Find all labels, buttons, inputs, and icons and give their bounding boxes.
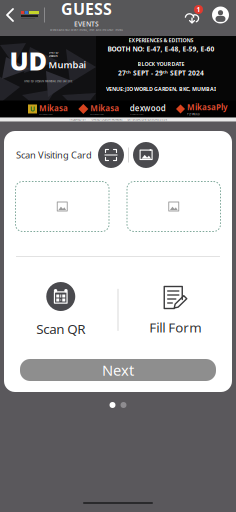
staticText: UNITED DESIGN MUMBAI INITIATIVE <box>24 79 72 83</box>
staticText: DESIGN <box>48 54 57 58</box>
staticText: Next <box>102 360 134 380</box>
staticText: MikasaPly <box>187 102 228 112</box>
button[interactable]: Add front of card <box>15 181 109 232</box>
staticText: BOOTH NO: E-47, E-48, E-59, E-60 <box>107 45 214 53</box>
staticText: EXPERIENCES & EDITIONS <box>128 36 193 44</box>
button[interactable]: Fill Form <box>118 283 232 336</box>
staticText: INTERIOR SOLUTIONS <box>130 113 144 115</box>
button[interactable]: Add back of card <box>126 181 221 232</box>
staticText: EVENTS <box>74 19 99 28</box>
staticText: 27ᵗʰ SEPT - 29ᵗʰ SEPT 2024 <box>118 68 204 77</box>
staticText: U <box>30 105 35 113</box>
staticText: Mikasa <box>39 103 68 113</box>
button[interactable]: Choose photo <box>133 142 159 168</box>
staticText: PRESENTED BY · UNITED DESIGN MUMBAI · EX… <box>68 118 167 121</box>
staticText: UD <box>9 44 47 77</box>
button[interactable]: Scan QR <box>4 282 117 338</box>
button[interactable]: Profile <box>204 0 236 30</box>
staticText: VENUE: JIO WORLD GARDEN, BKC, MUMBAI <box>106 85 216 92</box>
staticText: Scan Visiting Card <box>16 149 92 161</box>
staticText: PLYWOOD <box>187 112 200 116</box>
staticText: Mumbai <box>48 58 86 71</box>
button[interactable]: Back <box>0 0 21 30</box>
staticText: 1 <box>196 5 200 14</box>
staticText: Scan QR <box>36 320 85 338</box>
staticText: dexwood <box>130 103 166 113</box>
button[interactable]: Downloads <box>181 4 204 26</box>
staticText: REAL WOOD FLOORS <box>90 113 104 115</box>
staticText: BLOCK YOUR DATE <box>137 60 184 68</box>
staticText: Mikasa <box>90 103 119 113</box>
staticText: Fill Form <box>149 318 201 336</box>
staticText: GUESS <box>61 0 112 19</box>
button[interactable]: Next <box>20 359 216 381</box>
staticText: REAL WOOD FLOORS <box>39 113 53 115</box>
staticText: UNITED <box>48 51 58 54</box>
button[interactable]: Scan card <box>98 142 124 168</box>
staticText: EVENTS ARE NOT EVERYTHING, THEY ARE THE … <box>50 28 123 32</box>
